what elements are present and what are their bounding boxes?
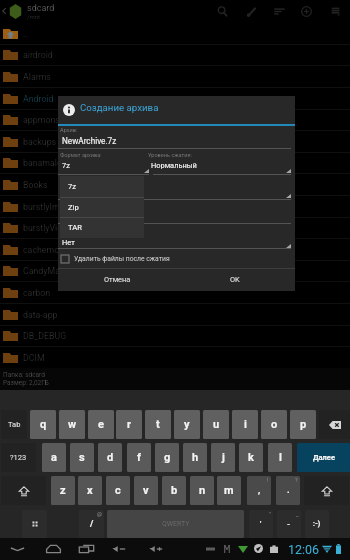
button[interactable]: d	[98, 443, 122, 472]
button[interactable]: k	[239, 443, 263, 472]
button[interactable]: m	[217, 476, 241, 505]
button[interactable]: n	[190, 476, 214, 505]
button[interactable]: c	[106, 476, 130, 505]
staticText: z	[60, 484, 66, 497]
button[interactable]: w	[59, 410, 85, 439]
button[interactable]: o	[261, 410, 287, 439]
button[interactable]: t	[145, 410, 171, 439]
button[interactable]: shift	[1, 476, 46, 505]
button[interactable]: TAR	[60, 217, 144, 238]
staticText: q	[40, 418, 47, 431]
button[interactable]: q	[30, 410, 56, 439]
staticText: QWERTY	[162, 520, 190, 528]
staticText: Шифровать имена:	[60, 227, 111, 234]
button[interactable]: Books	[0, 174, 350, 196]
staticText: airdroid	[23, 50, 53, 60]
button[interactable]: y	[174, 410, 200, 439]
button[interactable]: burstlyVid	[0, 217, 350, 239]
button[interactable]: bksp	[319, 410, 350, 439]
button[interactable]: g	[155, 443, 179, 472]
button[interactable]: Search	[212, 0, 233, 23]
button[interactable]: lang	[22, 510, 47, 538]
staticText: 7z	[62, 161, 70, 170]
button[interactable]: :-)	[305, 510, 329, 538]
button[interactable]: Удалить файлы после сжатия	[61, 252, 241, 266]
staticText: Далее	[313, 453, 335, 462]
button[interactable]: i	[232, 410, 258, 439]
button[interactable]: carbon	[0, 282, 350, 304]
staticText: i	[244, 418, 247, 431]
button[interactable]: Settings	[241, 0, 262, 23]
staticText: Books	[23, 180, 48, 190]
button[interactable]: a	[42, 443, 66, 472]
button[interactable]: j	[211, 443, 235, 472]
button[interactable]: Отмена	[58, 268, 176, 291]
staticText: _	[296, 511, 299, 517]
button[interactable]: appmons	[0, 109, 350, 131]
staticText: DB_DEBUG	[23, 331, 67, 341]
staticText: o	[271, 418, 278, 431]
button[interactable]: DCIM	[0, 347, 350, 369]
button[interactable]: p	[290, 410, 316, 439]
staticText: e	[98, 418, 104, 431]
button[interactable]: '	[249, 510, 273, 538]
button[interactable]: cachemon	[0, 239, 350, 261]
button[interactable]: OK	[176, 268, 294, 291]
staticText: b	[171, 484, 178, 497]
staticText: :-)	[313, 520, 321, 528]
staticText: cachemon	[23, 245, 65, 255]
staticText: s	[79, 451, 85, 464]
button[interactable]: Zip	[60, 197, 144, 218]
staticText: NewArchive.7z	[62, 136, 117, 146]
staticText: d	[107, 451, 114, 464]
button[interactable]: s	[70, 443, 94, 472]
button[interactable]: DB_DEBUG	[0, 325, 350, 347]
button[interactable]: x	[78, 476, 102, 505]
button[interactable]: Далее	[297, 443, 350, 472]
button[interactable]: Add	[296, 0, 317, 23]
button[interactable]: Sort	[269, 0, 290, 23]
button[interactable]: banamalo	[0, 152, 350, 174]
button[interactable]: v	[134, 476, 158, 505]
button[interactable]: ?123	[1, 443, 36, 472]
button[interactable]: Volume down	[108, 538, 130, 560]
staticText: @	[97, 511, 102, 517]
button[interactable]: r	[116, 410, 142, 439]
button[interactable]: airdroid	[0, 44, 350, 66]
button[interactable]: Back	[0, 5, 8, 17]
staticText: g	[164, 451, 171, 464]
button[interactable]: Recents	[75, 538, 97, 560]
button[interactable]: ,	[247, 476, 271, 505]
button[interactable]: /	[79, 510, 104, 538]
button[interactable]: 7z	[60, 176, 144, 197]
button[interactable]: Back	[6, 538, 28, 560]
staticText: p	[300, 418, 307, 431]
button[interactable]: f	[127, 443, 151, 472]
button[interactable]: b	[162, 476, 186, 505]
button[interactable]: .	[276, 476, 300, 505]
button[interactable]: u	[203, 410, 229, 439]
button[interactable]: h	[183, 443, 207, 472]
button[interactable]: CandyMa	[0, 260, 350, 282]
staticText: appmons	[23, 115, 60, 125]
staticText: c	[115, 484, 121, 497]
button[interactable]: burstlyIm	[0, 196, 350, 218]
button[interactable]: ..	[0, 23, 350, 45]
button[interactable]: Menu	[325, 0, 346, 23]
button[interactable]: z	[51, 476, 75, 505]
staticText: u	[213, 418, 220, 431]
button[interactable]: shift	[304, 476, 349, 505]
staticText: Удалить файлы после сжатия	[74, 255, 170, 263]
button[interactable]: backups	[0, 131, 350, 153]
staticText: a	[51, 451, 57, 464]
button[interactable]: Volume up	[145, 538, 167, 560]
button[interactable]: data-app	[0, 304, 350, 326]
button[interactable]: Home	[42, 538, 64, 560]
button[interactable]: -	[277, 510, 301, 538]
button[interactable]: Tab	[1, 410, 27, 439]
button[interactable]: Alarms	[0, 66, 350, 88]
button[interactable]: Android	[0, 88, 350, 110]
button[interactable]: e	[88, 410, 114, 439]
button[interactable]: l	[268, 443, 292, 472]
